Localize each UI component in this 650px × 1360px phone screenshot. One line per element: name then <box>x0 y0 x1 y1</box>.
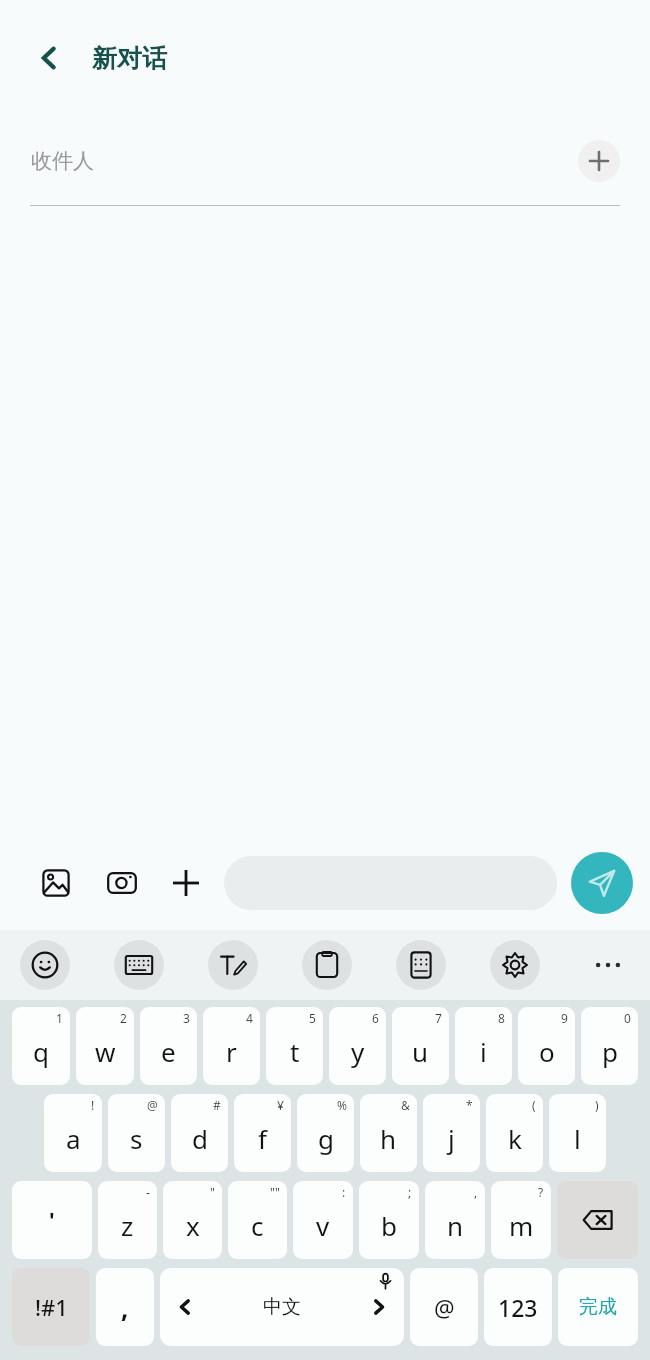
button[interactable]: ! <box>44 1094 102 1172</box>
staticText: s <box>130 1121 143 1156</box>
staticText: v <box>316 1208 330 1243</box>
staticText: t <box>290 1034 300 1069</box>
staticText: i <box>480 1034 487 1069</box>
staticText: 8 <box>498 1010 505 1026</box>
staticText: * <box>466 1097 473 1113</box>
button[interactable]: Add recipient <box>578 140 620 182</box>
staticText: 9 <box>561 1010 568 1026</box>
staticText: h <box>380 1121 397 1156</box>
staticText: 0 <box>624 1010 631 1026</box>
staticText: 中文 <box>263 1295 301 1319</box>
staticText: o <box>539 1034 555 1069</box>
button[interactable]: Emoji <box>20 940 70 990</box>
button[interactable]: " <box>163 1181 222 1259</box>
button[interactable]: ( <box>486 1094 543 1172</box>
staticText: 收件人 <box>31 148 94 174</box>
staticText: ; <box>408 1184 412 1200</box>
button[interactable]: "" <box>228 1181 287 1259</box>
staticText: " <box>210 1184 215 1200</box>
staticText: q <box>33 1034 49 1069</box>
staticText: @ <box>147 1097 158 1113</box>
button[interactable]: Send <box>571 852 633 914</box>
button[interactable]: % <box>297 1094 354 1172</box>
button[interactable]: Camera <box>98 859 146 907</box>
button[interactable]: Clipboard <box>302 940 352 990</box>
button[interactable]: ¥ <box>234 1094 291 1172</box>
staticText: 7 <box>435 1010 442 1026</box>
button[interactable]: 9 <box>518 1007 575 1085</box>
button[interactable]: Symbols <box>12 1268 90 1346</box>
button[interactable]: Done <box>558 1268 638 1346</box>
button[interactable]: & <box>360 1094 417 1172</box>
staticText: x <box>186 1208 200 1243</box>
staticText: 6 <box>372 1010 379 1026</box>
staticText: p <box>602 1034 618 1069</box>
staticText: n <box>447 1208 464 1243</box>
staticText: a <box>66 1121 81 1156</box>
staticText: 2 <box>120 1010 127 1026</box>
button[interactable]: At sign <box>410 1268 478 1346</box>
button[interactable]: Back <box>22 31 76 85</box>
button[interactable]: Settings <box>490 940 540 990</box>
button[interactable]: 6 <box>329 1007 386 1085</box>
button[interactable]: * <box>423 1094 480 1172</box>
button[interactable]: - <box>98 1181 157 1259</box>
staticText: % <box>337 1097 347 1113</box>
button[interactable]: 收件人 <box>0 116 650 206</box>
button[interactable]: More options <box>162 859 210 907</box>
button[interactable]: ) <box>549 1094 606 1172</box>
button[interactable]: Gallery <box>32 859 80 907</box>
staticText: 完成 <box>579 1295 617 1319</box>
button[interactable]: Keyboard <box>114 940 164 990</box>
staticText: - <box>146 1184 150 1200</box>
button[interactable]: 0 <box>581 1007 638 1085</box>
button[interactable]: Handwriting <box>208 940 258 990</box>
button[interactable]: 2 <box>76 1007 134 1085</box>
button[interactable]: Space, Chinese <box>160 1268 404 1346</box>
staticText: 123 <box>498 1292 538 1323</box>
button[interactable]: @ <box>108 1094 165 1172</box>
staticText: r <box>226 1034 237 1069</box>
staticText: & <box>401 1097 410 1113</box>
staticText: ( <box>532 1097 536 1113</box>
staticText: m <box>509 1208 534 1243</box>
button[interactable]: 3 <box>140 1007 197 1085</box>
staticText: l <box>574 1121 581 1156</box>
button[interactable]: Comma <box>96 1268 154 1346</box>
staticText: ) <box>595 1097 599 1113</box>
button[interactable]: apostrophe <box>12 1181 92 1259</box>
staticText: y <box>351 1034 365 1069</box>
staticText: , <box>121 1290 129 1325</box>
staticText: "" <box>270 1184 280 1200</box>
button[interactable]: ; <box>359 1181 419 1259</box>
button[interactable]: Numbers <box>484 1268 552 1346</box>
staticText: @ <box>434 1292 455 1323</box>
staticText: 3 <box>183 1010 190 1026</box>
button[interactable]: 7 <box>392 1007 449 1085</box>
button[interactable]: 8 <box>455 1007 512 1085</box>
staticText: : <box>342 1184 346 1200</box>
staticText: 5 <box>309 1010 316 1026</box>
button[interactable]: ? <box>491 1181 551 1259</box>
button[interactable]: 4 <box>203 1007 260 1085</box>
button[interactable]: 1 <box>12 1007 70 1085</box>
staticText: 4 <box>246 1010 253 1026</box>
button[interactable]: , <box>425 1181 485 1259</box>
staticText: ! <box>91 1097 95 1113</box>
button[interactable]: More <box>584 941 632 989</box>
button[interactable]: Keypad <box>396 940 446 990</box>
staticText: f <box>258 1121 267 1156</box>
button[interactable]: 5 <box>266 1007 323 1085</box>
staticText: ¥ <box>277 1097 284 1113</box>
staticText: 新对话 <box>92 43 167 74</box>
staticText: 1 <box>56 1010 63 1026</box>
staticText: w <box>95 1034 116 1069</box>
staticText: g <box>318 1121 334 1156</box>
staticText: z <box>121 1208 134 1243</box>
staticText: # <box>213 1097 221 1113</box>
button[interactable]: Backspace <box>557 1181 638 1259</box>
staticText: , <box>474 1184 478 1200</box>
button[interactable]: : <box>293 1181 353 1259</box>
button[interactable]: # <box>171 1094 228 1172</box>
